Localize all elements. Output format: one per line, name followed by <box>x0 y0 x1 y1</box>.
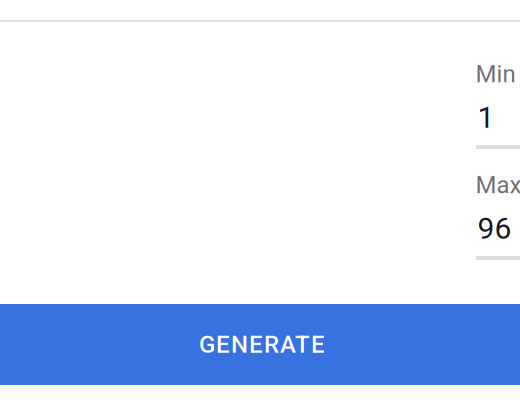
button[interactable]: Max, 96 <box>436 163 520 261</box>
staticText: Min <box>475 60 515 88</box>
staticText: 96 <box>477 211 511 246</box>
button[interactable]: Min, 1 <box>436 52 520 150</box>
button[interactable]: GENERATE <box>0 304 520 385</box>
staticText: GENERATE <box>199 330 325 358</box>
staticText: Max <box>475 171 520 199</box>
staticText: 1 <box>477 100 494 135</box>
